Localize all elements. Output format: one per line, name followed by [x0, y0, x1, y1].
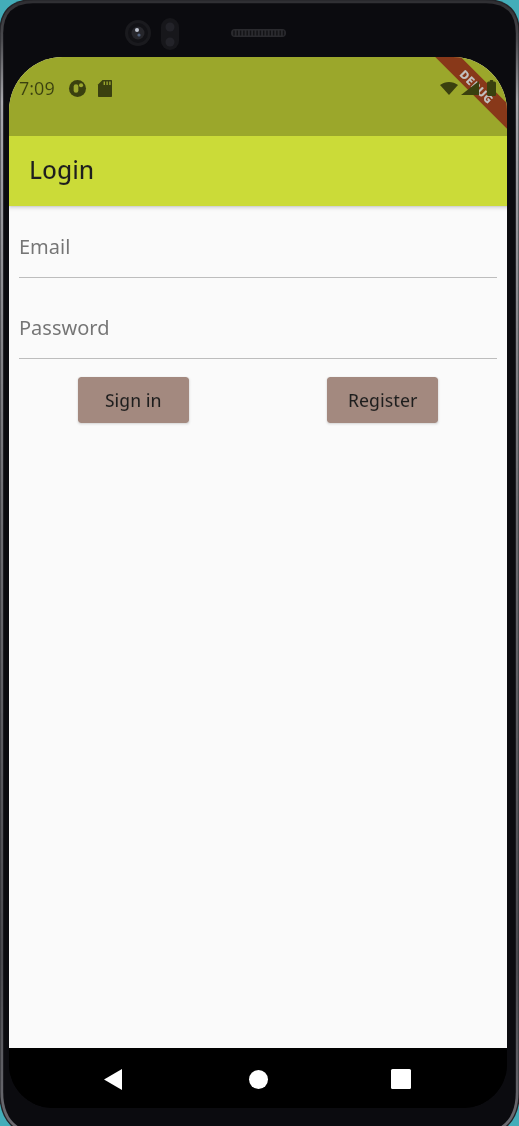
staticText: Sign in	[105, 388, 162, 412]
staticText: Register	[348, 388, 418, 412]
button[interactable]: Register	[327, 377, 438, 423]
staticText: 7:09	[19, 76, 55, 101]
button[interactable]: Password	[9, 278, 507, 359]
button[interactable]: Recent apps	[367, 1054, 435, 1104]
button[interactable]: Email	[9, 206, 507, 278]
staticText: Password	[19, 314, 110, 341]
button[interactable]: Home	[224, 1054, 292, 1104]
button[interactable]: Sign in	[78, 377, 189, 423]
button[interactable]: Back	[79, 1054, 147, 1104]
staticText: DEBUG	[457, 66, 497, 107]
staticText: Email	[19, 233, 71, 260]
staticText: Login	[29, 153, 95, 186]
